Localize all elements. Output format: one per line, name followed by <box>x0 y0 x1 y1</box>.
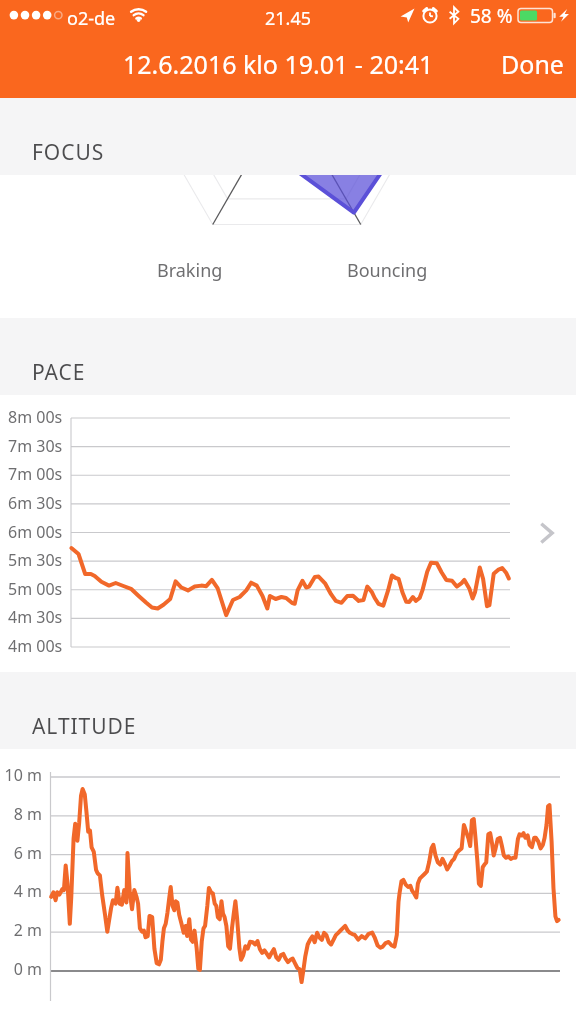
staticText: FOCUS <box>32 138 105 167</box>
staticText: 4m 30s <box>8 606 63 628</box>
staticText: 21.45 <box>265 6 312 31</box>
staticText: Bouncing <box>347 258 428 283</box>
staticText: 6 m <box>13 842 42 864</box>
staticText: Braking <box>157 258 223 283</box>
staticText: 10 m <box>4 764 42 786</box>
button[interactable]: Show more pace details <box>528 511 570 553</box>
staticText: 4 m <box>13 880 42 902</box>
staticText: ALTITUDE <box>32 712 137 741</box>
staticText: 12.6.2016 klo 19.01 - 20:41 <box>123 47 434 81</box>
staticText: 6m 00s <box>8 521 63 543</box>
staticText: 8m 00s <box>8 406 63 428</box>
staticText: 58 % <box>470 3 513 29</box>
staticText: 7m 30s <box>8 435 63 457</box>
staticText: 4m 00s <box>8 635 63 657</box>
staticText: Done <box>501 47 564 81</box>
staticText: o2-de <box>67 6 116 31</box>
staticText: 2 m <box>13 919 42 941</box>
button[interactable]: Done <box>483 38 576 95</box>
staticText: PACE <box>32 358 86 387</box>
staticText: 5m 00s <box>8 578 63 600</box>
staticText: 6m 30s <box>8 492 63 514</box>
staticText: 8 m <box>13 803 42 825</box>
staticText: 0 m <box>13 958 42 980</box>
staticText: 5m 30s <box>8 549 63 571</box>
staticText: 7m 00s <box>8 463 63 485</box>
